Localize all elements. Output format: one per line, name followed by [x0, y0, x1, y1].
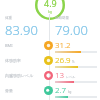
staticText: kg	[48, 9, 53, 14]
staticText: 内臓脂肪レベル	[5, 73, 34, 78]
staticText: 体脂肪率	[5, 58, 21, 63]
staticText: 除脂肪量	[55, 16, 69, 20]
staticText: 骨量	[5, 88, 13, 93]
button[interactable]: 除脂肪量	[50, 16, 100, 39]
staticText: 79.00	[55, 21, 88, 39]
staticText: BMI	[5, 43, 13, 48]
button[interactable]: 体重	[0, 16, 50, 39]
staticText: kg	[68, 90, 72, 94]
staticText: レベル	[66, 75, 76, 79]
button[interactable]: Body score gauge	[35, 0, 65, 20]
button[interactable]: 骨量	[0, 83, 100, 98]
button[interactable]: 内臓脂肪レベル	[0, 68, 100, 83]
staticText: 31.2	[55, 39, 71, 50]
button[interactable]: 体脂肪率	[0, 53, 100, 68]
staticText: 体重	[5, 16, 12, 20]
staticText: %	[72, 60, 75, 64]
staticText: 26.9	[55, 54, 71, 65]
staticText: 4.9	[44, 0, 57, 9]
staticText: 13	[55, 69, 65, 80]
staticText: 83.90	[5, 21, 38, 39]
button[interactable]: BMI	[0, 38, 100, 53]
staticText: 2.7	[55, 84, 67, 95]
